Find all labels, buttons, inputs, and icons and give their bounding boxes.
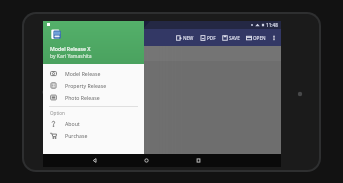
button[interactable]: Property Release (43, 79, 144, 91)
button[interactable]: PDF (197, 29, 219, 46)
button[interactable]: NEW (173, 29, 197, 46)
staticText: OPEN (253, 35, 266, 41)
staticText: NEW (183, 35, 194, 41)
button[interactable]: More options (269, 29, 279, 46)
button[interactable]: Purchase (43, 129, 144, 141)
staticText: About (65, 120, 80, 127)
staticText: 11:48 (266, 22, 278, 28)
button[interactable]: OPEN (243, 29, 269, 46)
staticText: Model Release (65, 70, 101, 77)
staticText: PDF (207, 35, 216, 41)
staticText: SAVE (229, 35, 240, 41)
button[interactable]: SAVE (219, 29, 243, 46)
button[interactable]: Recents (190, 154, 206, 167)
staticText: Purchase (65, 132, 88, 139)
button[interactable]: Home (138, 154, 154, 167)
staticText: Option (50, 110, 65, 116)
staticText: Property Release (65, 82, 107, 89)
button[interactable]: About (43, 117, 144, 129)
button[interactable]: Back (86, 154, 102, 167)
button[interactable]: Model Release (43, 67, 144, 79)
staticText: Model Release X (50, 45, 91, 52)
button[interactable]: Photo Release (43, 91, 144, 103)
staticText: Photo Release (65, 94, 100, 101)
staticText: by Kari Yamashita (50, 53, 92, 60)
